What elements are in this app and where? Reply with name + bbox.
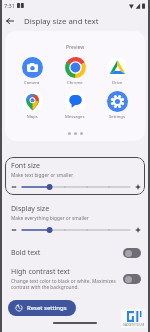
staticText: Messages [65, 114, 85, 120]
button[interactable]: Messages [60, 91, 90, 120]
staticText: Bold text [11, 248, 41, 258]
staticText: Font size [11, 161, 40, 171]
staticText: Display size and text [24, 16, 99, 27]
button[interactable]: Settings [102, 91, 132, 120]
staticText: Make text bigger or smaller [11, 172, 74, 179]
button[interactable]: Maps [17, 91, 47, 120]
staticText: Chrome [67, 80, 83, 86]
staticText: Camera [24, 80, 40, 86]
button[interactable]: Drive [102, 57, 132, 86]
staticText: Maps [27, 114, 38, 120]
staticText: Settings [109, 114, 125, 120]
staticText: GADGETS TO USE [123, 323, 145, 327]
staticText: Reset settings [27, 304, 67, 312]
staticText: Display size [11, 204, 50, 214]
staticText: High contrast text [11, 267, 70, 277]
staticText: Drive [112, 80, 123, 86]
staticText: Change text color to black or white. Max… [11, 278, 117, 290]
button[interactable]: Back [0, 11, 20, 31]
button[interactable]: Reset settings [8, 300, 76, 316]
button[interactable]: Bold text [0, 248, 150, 258]
staticText: 7:31 [4, 2, 15, 9]
button[interactable]: Camera [17, 57, 47, 86]
button[interactable]: High contrast text [0, 267, 150, 290]
staticText: Make everything bigger or smaller [11, 215, 89, 222]
button[interactable]: Display size [0, 204, 150, 235]
button[interactable]: Font size [5, 157, 145, 195]
staticText: Preview [66, 44, 85, 51]
button[interactable]: Chrome [60, 57, 90, 86]
